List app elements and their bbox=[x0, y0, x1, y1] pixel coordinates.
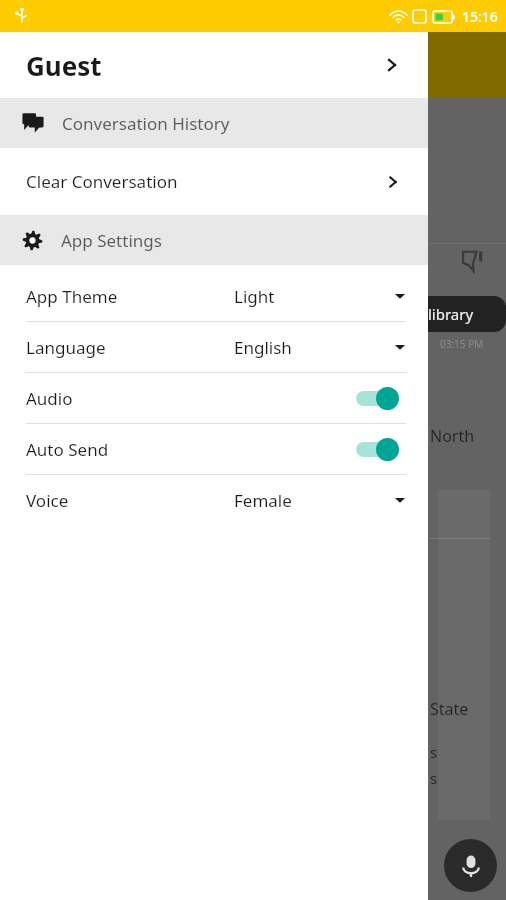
button[interactable]: Voice bbox=[0, 475, 428, 525]
staticText: Audio bbox=[26, 387, 73, 410]
other: App Settings bbox=[22, 230, 43, 251]
staticText: Light bbox=[234, 285, 275, 308]
staticText: North bbox=[430, 425, 475, 447]
staticText: State bbox=[430, 698, 469, 720]
button[interactable]: Audio bbox=[0, 373, 428, 423]
staticText: Language bbox=[26, 336, 106, 359]
button[interactable]: Auto Send bbox=[0, 424, 428, 474]
staticText: 15:16 bbox=[462, 7, 498, 26]
button[interactable]: App Theme bbox=[0, 271, 428, 321]
staticText: English bbox=[234, 336, 292, 359]
staticText: 03:15 PM bbox=[440, 337, 484, 351]
button[interactable]: Microphone bbox=[444, 839, 497, 892]
staticText: Clear Conversation bbox=[26, 170, 178, 193]
staticText: Guest bbox=[26, 48, 102, 83]
staticText: App Settings bbox=[61, 229, 162, 252]
staticText: library bbox=[428, 304, 474, 324]
staticText: Voice bbox=[26, 489, 69, 512]
staticText: s bbox=[430, 742, 438, 762]
staticText: Female bbox=[234, 489, 292, 512]
button[interactable]: Guest bbox=[0, 32, 428, 98]
button[interactable]: Language bbox=[0, 322, 428, 372]
staticText: Auto Send bbox=[26, 438, 109, 461]
button[interactable]: App Settings bbox=[0, 215, 428, 265]
button[interactable]: Clear Conversation bbox=[0, 148, 428, 215]
staticText: s bbox=[430, 768, 438, 788]
other: Conversation History bbox=[22, 112, 44, 134]
staticText: Conversation History bbox=[62, 112, 230, 135]
other: USB connected bbox=[14, 8, 30, 24]
staticText: App Theme bbox=[26, 285, 118, 308]
button[interactable]: Conversation History bbox=[0, 98, 428, 148]
